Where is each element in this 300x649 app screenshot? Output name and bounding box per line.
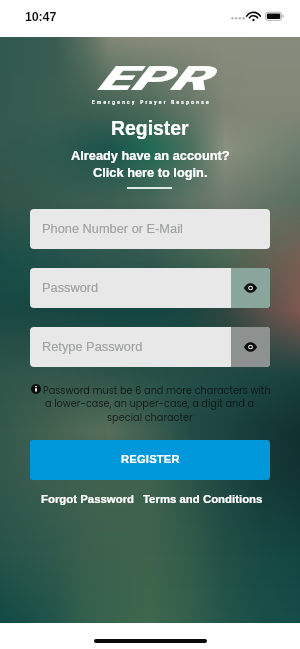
staticText: Emergency Prayer Response bbox=[92, 99, 211, 105]
button[interactable]: Password bbox=[30, 268, 270, 308]
button[interactable]: Click here to login. bbox=[93, 165, 208, 179]
staticText: a lower-case, an upper-case, a digit and… bbox=[45, 397, 255, 411]
button[interactable]: Already have an account? bbox=[71, 148, 230, 162]
button[interactable]: REGISTER bbox=[30, 440, 270, 480]
button[interactable]: Show password bbox=[231, 327, 270, 367]
staticText: 10:47 bbox=[25, 10, 57, 24]
button[interactable]: Terms and Conditions bbox=[143, 493, 263, 506]
staticText: REGISTER bbox=[121, 453, 180, 466]
staticText: Password must be 6 and more characters w… bbox=[43, 384, 271, 398]
staticText: Retype Password bbox=[42, 339, 143, 353]
button[interactable]: Retype Password bbox=[30, 327, 270, 367]
button[interactable]: Show password bbox=[231, 268, 270, 308]
staticText: special character bbox=[107, 411, 193, 425]
staticText: EPR bbox=[97, 59, 210, 98]
staticText: Register bbox=[111, 117, 189, 139]
staticText: Password bbox=[42, 280, 99, 294]
staticText: Phone Number or E-Mail bbox=[42, 221, 183, 235]
button[interactable]: Forgot Password bbox=[41, 493, 135, 506]
button[interactable]: Phone Number or E-Mail bbox=[30, 209, 270, 249]
